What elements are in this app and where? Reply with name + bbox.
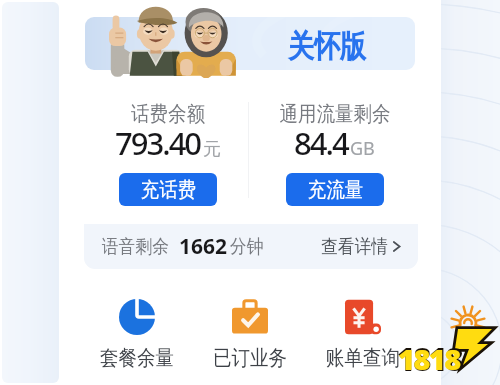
other: 账单查询	[345, 299, 381, 335]
staticText: 语音剩余	[102, 235, 169, 259]
staticText: 查看详情	[321, 235, 388, 259]
staticText: 分钟	[230, 235, 263, 259]
staticText: 1662	[179, 232, 228, 261]
staticText: 通用流量剩余	[280, 101, 390, 127]
staticText: 793.40	[115, 122, 201, 164]
staticText: 话费余额	[131, 101, 205, 127]
button[interactable]: 套餐余量	[80, 299, 193, 371]
button[interactable]: 语音剩余	[84, 224, 418, 269]
other: 已订业务	[232, 299, 268, 335]
staticText: 1818	[398, 339, 460, 378]
button[interactable]: 充流量	[286, 173, 384, 206]
staticText: 充话费	[141, 177, 196, 203]
other: 套餐余量	[119, 299, 155, 335]
staticText: 套餐余量	[100, 345, 174, 371]
staticText: 84.4	[294, 122, 348, 164]
staticText: 已订业务	[213, 345, 287, 371]
staticText: 关怀版	[288, 27, 366, 66]
staticText: GB	[350, 136, 375, 161]
staticText: 1818	[397, 338, 462, 380]
staticText: 账单查询	[326, 345, 400, 371]
button[interactable]: 充话费	[119, 173, 217, 206]
button[interactable]: 已订业务	[193, 299, 306, 371]
staticText: 充流量	[308, 177, 363, 203]
button[interactable]: 关怀版	[85, 17, 415, 70]
button[interactable]: 账单查询	[306, 299, 419, 371]
staticText: 元	[203, 138, 221, 161]
